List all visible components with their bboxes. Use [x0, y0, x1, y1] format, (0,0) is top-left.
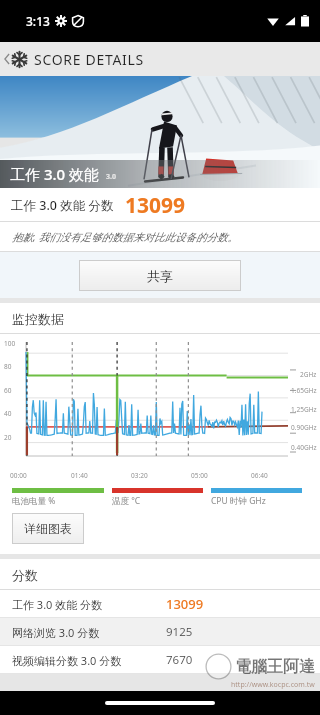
staticText: 抱歉, 我们没有足够的数据来对比此设备的分数。 [12, 230, 238, 244]
staticText: 温度 °C [112, 495, 141, 507]
staticText: 详细图表 [24, 521, 72, 536]
staticText: 01:40 [71, 471, 88, 480]
button[interactable]: 共享 [79, 260, 241, 291]
staticText: 9125 [166, 624, 193, 640]
staticText: http://www.kocpc.com.tw [231, 680, 315, 690]
staticText: 05:00 [191, 471, 208, 480]
staticText: 共享 [147, 268, 173, 284]
button[interactable]: 视频编辑分数 3.0 分数 [0, 646, 320, 674]
staticText: 100 [4, 339, 16, 348]
staticText: SCORE DETAILS [34, 50, 144, 69]
staticText: 20 [4, 433, 12, 442]
staticText: 電腦王阿達 [235, 657, 315, 677]
button[interactable]: 工作 3.0 效能 分数 [0, 590, 320, 618]
staticText: 1.65GHz [291, 386, 317, 395]
staticText: 80 [4, 362, 12, 371]
staticText: CPU 时钟 GHz [211, 495, 266, 507]
staticText: 0.90GHz [291, 423, 317, 432]
staticText: 0.40GHz [291, 443, 317, 452]
button[interactable]: 网络浏览 3.0 分数 [0, 618, 320, 646]
staticText: 2GHz [300, 370, 317, 379]
staticText: 分数 [12, 567, 38, 583]
staticText: 电池电量 % [12, 495, 56, 507]
staticText: 3:13 [26, 13, 50, 29]
button[interactable]: Back [0, 42, 30, 76]
staticText: 13099 [166, 595, 204, 613]
staticText: 60 [4, 386, 12, 395]
staticText: 03:20 [131, 471, 148, 480]
staticText: 工作 3.0 效能 分数 [12, 597, 103, 612]
staticText: 工作 3.0 效能 [10, 164, 100, 184]
staticText: 网络浏览 3.0 分数 [12, 625, 100, 640]
staticText: 工作 3.0 效能 分数 [11, 197, 114, 214]
staticText: 7670 [166, 652, 193, 668]
staticText: 监控数据 [12, 311, 64, 327]
staticText: 13099 [125, 191, 186, 220]
staticText: 40 [4, 409, 12, 418]
staticText: 3.0 [106, 172, 116, 182]
staticText: 视频编辑分数 3.0 分数 [12, 653, 122, 668]
staticText: 00:00 [10, 471, 27, 480]
staticText: 06:40 [251, 471, 268, 480]
staticText: 1.25GHz [291, 405, 317, 414]
button[interactable]: 详细图表 [12, 513, 84, 544]
